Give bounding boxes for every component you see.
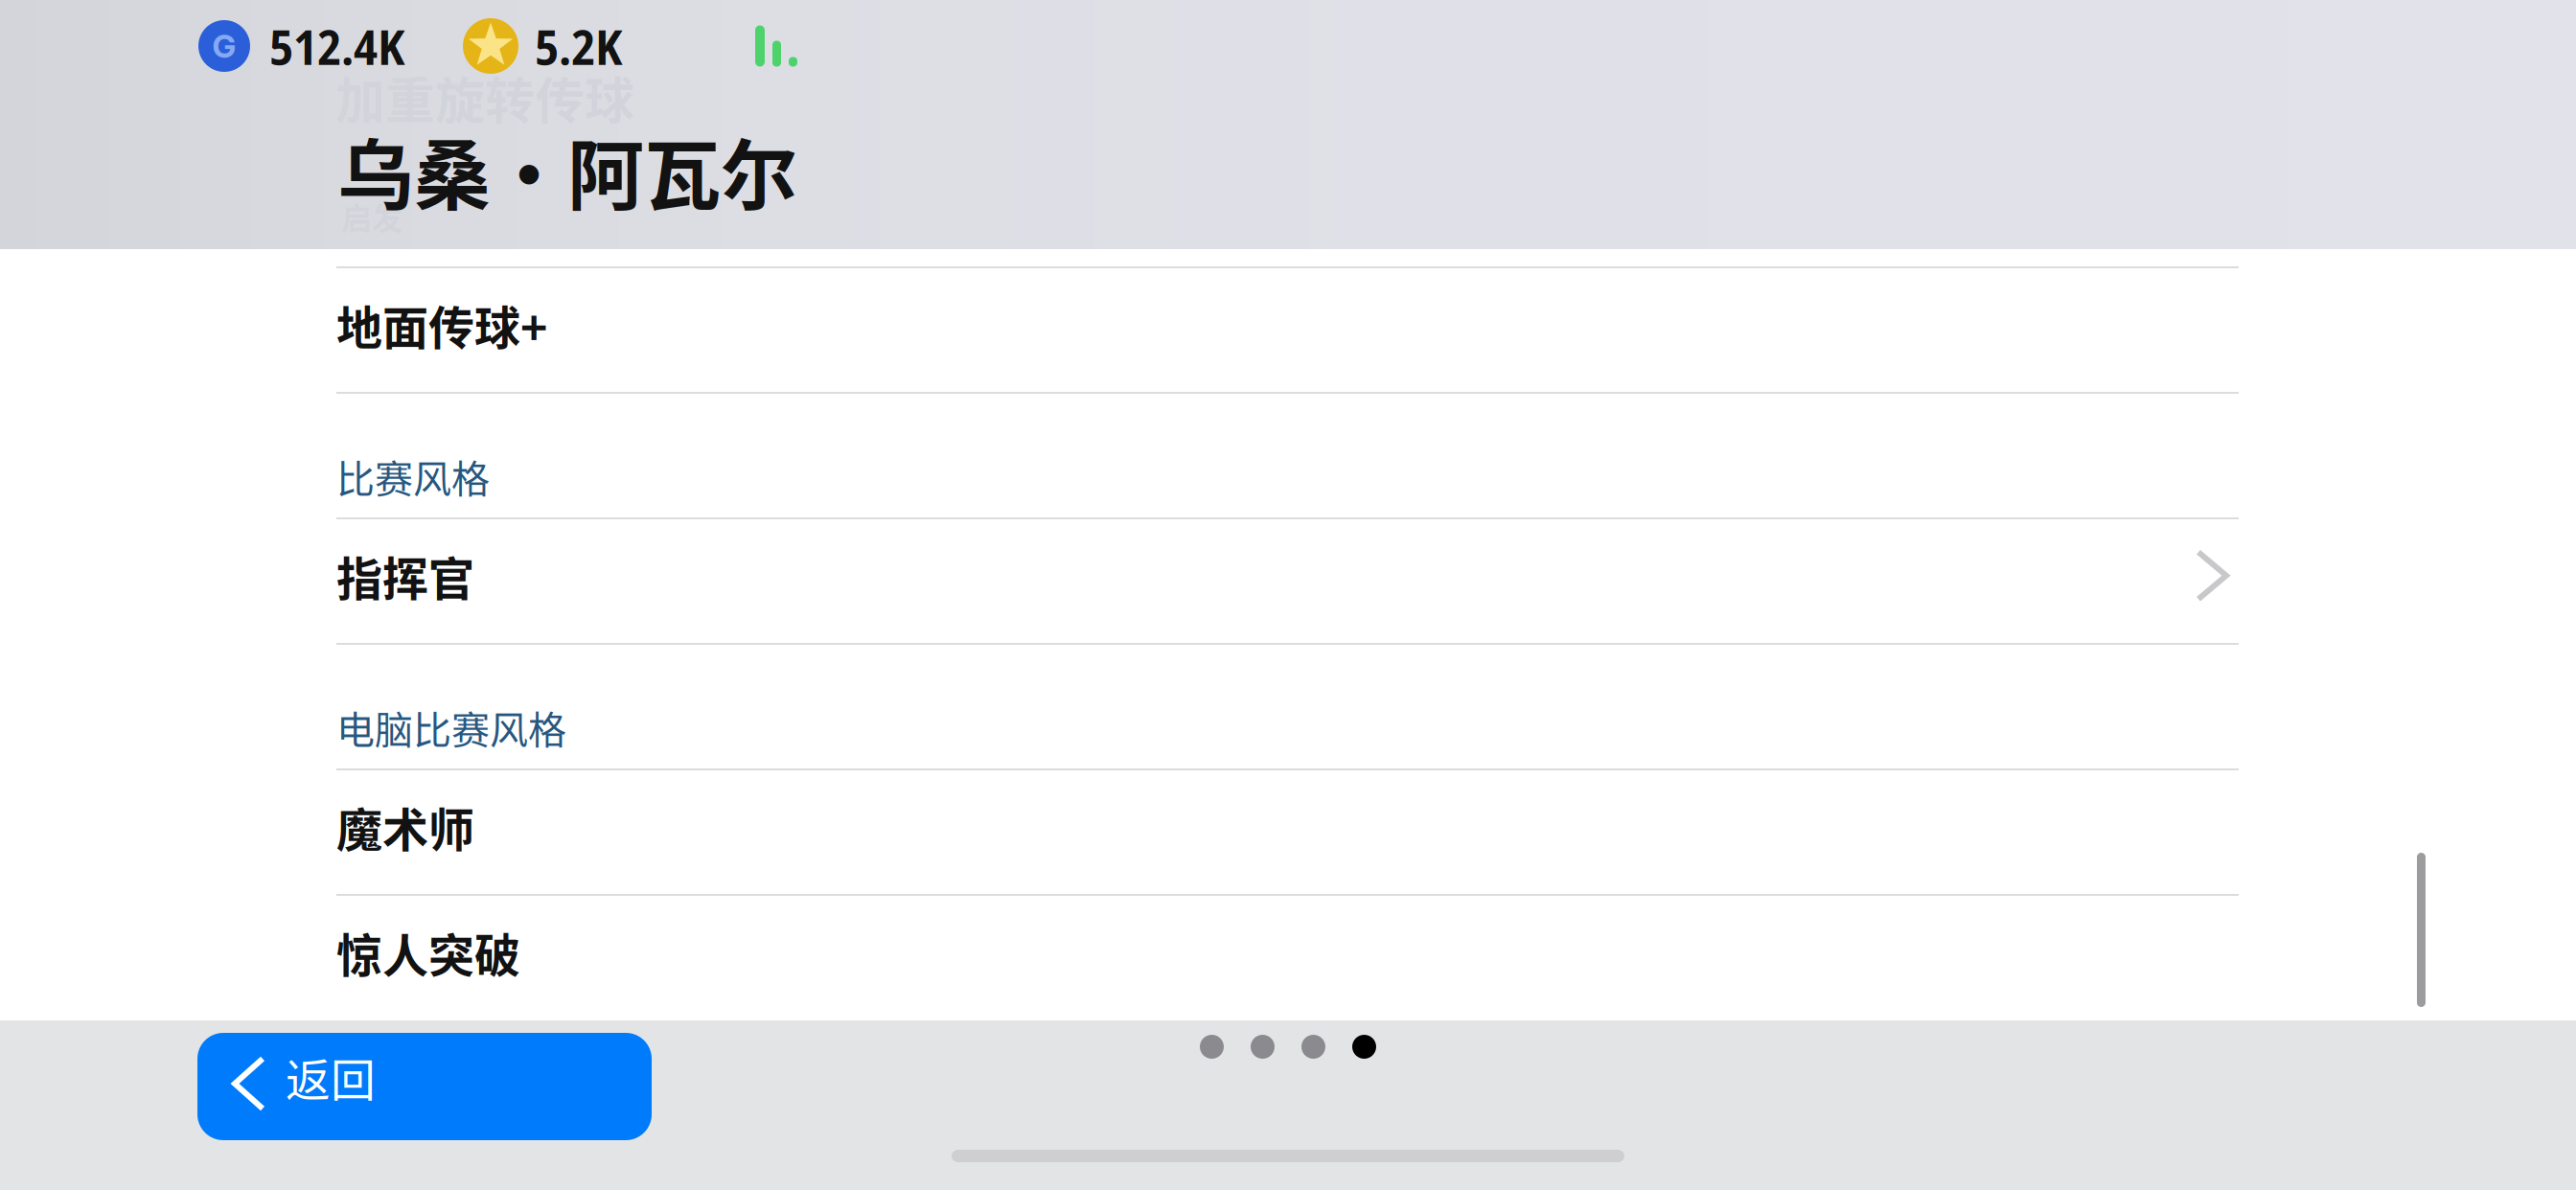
staticText: 比赛风格 <box>336 448 490 504</box>
staticText: 惊人突破 <box>336 919 520 985</box>
button[interactable]: 魔术师 <box>336 770 2239 894</box>
staticText: 返回 <box>286 1045 376 1109</box>
staticText: 512.4K <box>269 13 404 79</box>
staticText: 乌桑·阿瓦尔 <box>337 114 797 225</box>
staticText: G <box>212 27 236 65</box>
staticText: 指挥官 <box>336 542 474 609</box>
staticText: 地面传球+ <box>336 291 547 358</box>
button[interactable]: 地面传球+ <box>336 268 2239 392</box>
staticText: 电脑比赛风格 <box>336 699 566 755</box>
staticText: 5.2K <box>535 13 622 79</box>
button[interactable]: 指挥官 <box>336 519 2239 643</box>
button[interactable]: 返回 <box>197 1033 652 1140</box>
button[interactable]: 惊人突破 <box>336 896 2239 1019</box>
staticText: 魔术师 <box>336 793 474 860</box>
staticText: 启发 <box>341 194 402 239</box>
staticText: 加重旋转传球 <box>335 61 634 133</box>
